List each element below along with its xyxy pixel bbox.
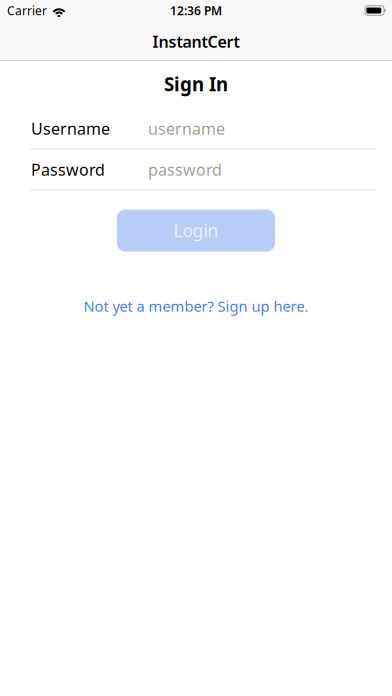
staticText: 12:36 PM [170,2,222,18]
staticText: Login [173,219,218,242]
staticText: Username [31,118,110,139]
staticText: Sign In [164,72,228,96]
staticText: Not yet a member? Sign up here. [83,296,308,316]
staticText: InstantCert [152,31,239,52]
staticText: Carrier [7,2,47,18]
staticText: Password [31,159,105,180]
textField[interactable]: username [148,118,377,139]
button[interactable]: Login [117,209,275,251]
staticText: username [148,118,225,139]
button[interactable]: Not yet a member? Sign up here. [83,296,308,316]
staticText: password [148,159,222,180]
secureTextField[interactable]: password [148,159,377,180]
